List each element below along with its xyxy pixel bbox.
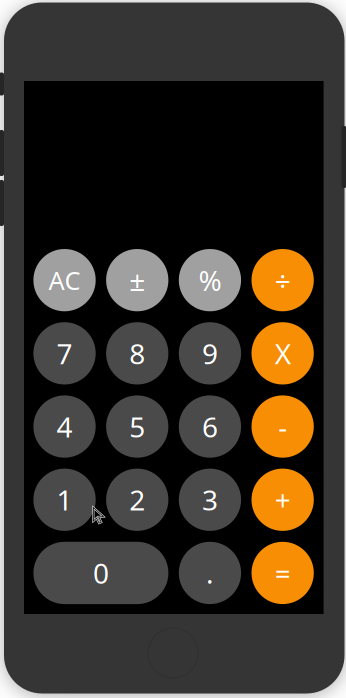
staticText: - — [278, 408, 287, 445]
button[interactable]: 9 — [179, 322, 241, 384]
button[interactable]: ± — [106, 249, 168, 311]
staticText: 0 — [93, 554, 109, 592]
staticText: 9 — [202, 335, 218, 372]
button[interactable]: - — [251, 395, 314, 458]
staticText: . — [206, 554, 214, 592]
button[interactable]: % — [179, 249, 241, 311]
button[interactable]: 8 — [106, 322, 168, 384]
button[interactable]: + — [251, 469, 314, 531]
button[interactable]: X — [251, 322, 314, 384]
button[interactable]: AC — [33, 249, 96, 311]
staticText: ± — [129, 262, 145, 299]
staticText: X — [275, 335, 291, 372]
staticText: % — [198, 262, 221, 299]
staticText: 6 — [202, 408, 218, 445]
button[interactable]: 1 — [33, 469, 96, 531]
button[interactable]: ÷ — [251, 249, 314, 311]
staticText: AC — [48, 263, 80, 297]
staticText: 4 — [56, 408, 72, 445]
staticText: 1 — [56, 481, 72, 518]
staticText: 7 — [56, 335, 72, 372]
staticText: 2 — [129, 481, 145, 518]
button[interactable]: 4 — [33, 395, 96, 458]
button[interactable]: = — [251, 542, 314, 604]
button[interactable]: 5 — [106, 395, 168, 458]
button[interactable]: 6 — [179, 395, 241, 458]
button[interactable]: 0 — [33, 542, 168, 604]
staticText: 5 — [129, 408, 145, 445]
button[interactable]: 2 — [106, 469, 168, 531]
staticText: ÷ — [275, 262, 291, 299]
staticText: + — [275, 481, 291, 518]
button[interactable]: . — [179, 542, 241, 604]
staticText: 8 — [129, 335, 145, 372]
staticText: 3 — [202, 481, 218, 518]
button[interactable]: 3 — [179, 469, 241, 531]
button[interactable]: 7 — [33, 322, 96, 384]
staticText: = — [275, 554, 291, 592]
